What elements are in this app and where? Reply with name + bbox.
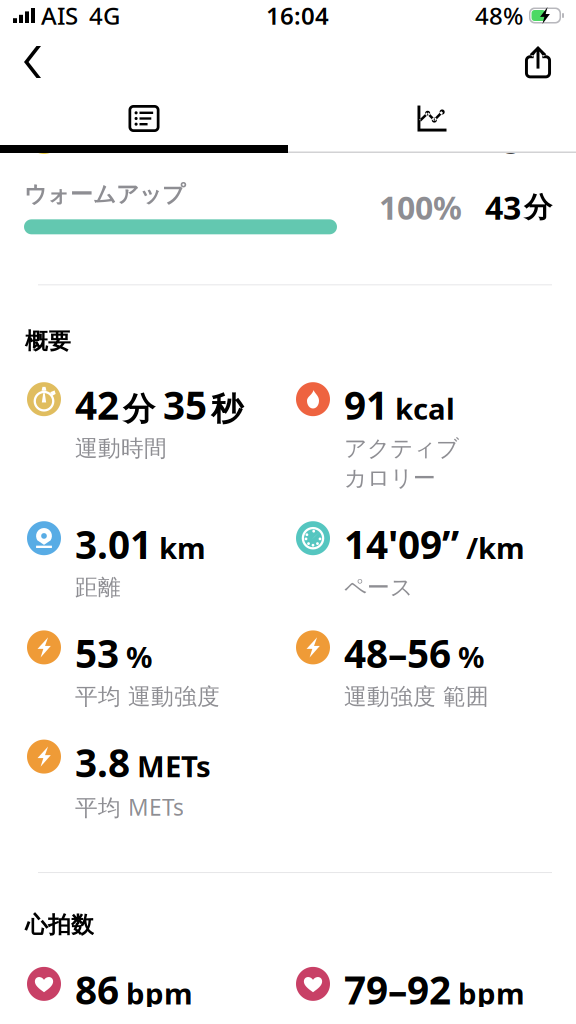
staticText: ウォームアップ — [24, 180, 185, 208]
button[interactable]: Details — [0, 93, 288, 145]
staticText: km — [159, 528, 206, 567]
button[interactable]: Charts — [288, 93, 576, 144]
staticText: 4G — [89, 0, 120, 31]
staticText: 分 — [524, 190, 552, 225]
staticText: bpm — [458, 974, 525, 1013]
staticText: 14'09” — [344, 518, 459, 569]
staticText: 運動強度 範囲 — [344, 683, 489, 710]
staticText: % — [458, 637, 484, 676]
staticText: 平均 運動強度 — [75, 683, 220, 710]
button[interactable]: Back — [0, 33, 63, 91]
staticText: bpm — [126, 974, 193, 1013]
staticText: 平均 METs — [75, 792, 184, 822]
staticText: 79–92 — [344, 964, 451, 1015]
staticText: 運動時間 — [75, 434, 167, 462]
staticText: 43 — [485, 186, 521, 229]
staticText: 秒 — [211, 389, 243, 429]
staticText: 48% — [475, 0, 523, 31]
staticText: 42 — [75, 379, 119, 430]
staticText: 距離 — [75, 574, 121, 601]
staticText: 分 — [524, 120, 552, 154]
staticText: METs — [137, 746, 211, 785]
staticText: kcal — [395, 389, 455, 428]
staticText: 48–56 — [344, 627, 451, 679]
staticText: /km — [466, 528, 525, 567]
staticText: カロリー — [344, 464, 436, 492]
staticText: 53 — [75, 627, 119, 679]
staticText: 91 — [344, 379, 388, 430]
staticText: 86 — [75, 964, 119, 1015]
staticText: 分 — [123, 389, 155, 429]
staticText: % — [126, 637, 152, 676]
staticText: 5 — [503, 120, 521, 162]
staticText: 3.01 — [75, 518, 152, 569]
staticText: AIS — [41, 0, 78, 31]
staticText: ペース — [344, 574, 413, 601]
staticText: 16:04 — [266, 0, 329, 31]
staticText: 概要 — [25, 327, 71, 355]
staticText: 心拍数 — [25, 911, 94, 939]
staticText: 3.8 — [75, 737, 130, 788]
button[interactable]: Share — [502, 33, 576, 90]
staticText: 35 — [163, 379, 207, 430]
staticText: アクティブ — [344, 434, 459, 462]
staticText: 100% — [379, 186, 462, 229]
